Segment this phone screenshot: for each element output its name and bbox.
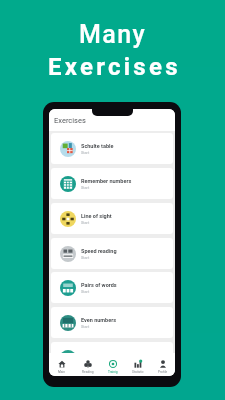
button[interactable]: Trainig xyxy=(100,353,125,376)
staticText: Start xyxy=(81,220,90,224)
staticText: Schulte table xyxy=(81,143,114,149)
staticText: Start xyxy=(81,359,90,363)
staticText: Exercises xyxy=(54,116,86,125)
staticText: Trainig xyxy=(108,370,118,374)
button[interactable]: Profile xyxy=(150,353,175,376)
staticText: Even numbers xyxy=(81,317,117,323)
button[interactable]: Reading xyxy=(75,353,100,376)
staticText: Exercises xyxy=(48,53,181,81)
staticText: Main xyxy=(58,370,66,374)
button[interactable]: Even numbers xyxy=(51,307,173,338)
button[interactable]: Remember numbers xyxy=(51,168,173,199)
staticText: Line of sight xyxy=(81,213,112,219)
button[interactable]: Schulte table xyxy=(51,133,173,164)
staticText: Start xyxy=(81,255,90,259)
staticText: Profile xyxy=(158,370,168,374)
button[interactable]: Pairs of words xyxy=(51,272,173,303)
staticText: Speed reading xyxy=(81,248,117,254)
staticText: Many xyxy=(79,20,146,49)
button[interactable]: Word pyramid xyxy=(51,342,173,373)
staticText: Start xyxy=(81,150,90,154)
staticText: Pairs of words xyxy=(81,282,117,288)
button[interactable]: Line of sight xyxy=(51,203,173,234)
button[interactable]: Main xyxy=(49,353,75,376)
staticText: Statistic xyxy=(132,370,144,374)
staticText: Reading xyxy=(82,370,94,374)
staticText: Start xyxy=(81,185,90,189)
button[interactable]: Speed reading xyxy=(51,238,173,269)
staticText: Start xyxy=(81,324,90,328)
staticText: Remember numbers xyxy=(81,178,132,184)
button[interactable]: Statistic xyxy=(125,353,150,376)
staticText: Start xyxy=(81,289,90,293)
